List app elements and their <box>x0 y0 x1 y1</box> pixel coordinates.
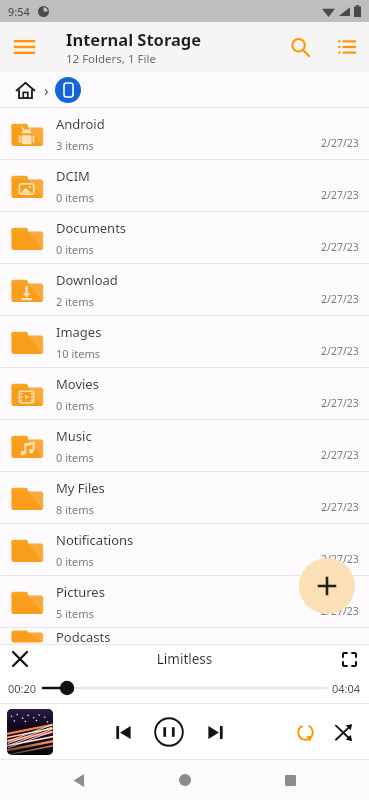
staticText: 0 items <box>56 242 94 257</box>
button[interactable]: Menu <box>0 23 48 71</box>
button[interactable]: My Files <box>0 472 369 523</box>
staticText: 10 items <box>56 346 101 361</box>
staticText: 2/27/23 <box>321 188 359 202</box>
staticText: Pictures <box>56 583 105 601</box>
staticText: 12 Folders, 1 File <box>66 51 156 67</box>
staticText: Podcasts <box>56 628 111 644</box>
button[interactable]: Home <box>10 75 40 105</box>
button[interactable]: Android <box>0 108 369 159</box>
staticText: 0 items <box>56 398 94 413</box>
staticText: Internal Storage <box>66 28 202 50</box>
button[interactable]: Previous <box>104 713 142 751</box>
staticText: 2/27/23 <box>321 552 359 566</box>
staticText: 8 items <box>56 502 94 517</box>
staticText: Android <box>56 115 105 133</box>
button[interactable]: Close <box>0 645 40 673</box>
button[interactable]: Download <box>0 264 369 315</box>
staticText: 2/27/23 <box>321 136 359 150</box>
staticText: Images <box>56 323 102 341</box>
staticText: 2/27/23 <box>321 292 359 306</box>
button[interactable]: Repeat <box>286 713 324 751</box>
button[interactable]: Internal storage <box>55 77 81 103</box>
staticText: 2/27/23 <box>321 396 359 410</box>
staticText: Documents <box>56 219 127 237</box>
button[interactable]: Images <box>0 316 369 367</box>
button[interactable]: DCIM <box>0 160 369 211</box>
staticText: 5 items <box>56 606 94 621</box>
staticText: 2/27/23 <box>321 344 359 358</box>
button[interactable]: Pictures <box>0 576 369 627</box>
staticText: 0 items <box>56 190 94 205</box>
staticText: DCIM <box>56 167 90 185</box>
staticText: 2 items <box>56 294 94 309</box>
button[interactable]: Shuffle <box>324 713 362 751</box>
button[interactable] <box>7 709 53 755</box>
staticText: 2/27/23 <box>321 500 359 514</box>
staticText: Music <box>56 427 92 445</box>
button[interactable]: Add <box>299 558 355 614</box>
button[interactable]: Search <box>277 24 323 70</box>
staticText: 04:04 <box>332 681 361 696</box>
staticText: 2/27/23 <box>321 240 359 254</box>
staticText: 0 items <box>56 554 94 569</box>
staticText: 00:20 <box>8 681 37 696</box>
button[interactable]: Back <box>52 760 106 800</box>
staticText: Download <box>56 271 118 289</box>
button[interactable] <box>43 676 326 700</box>
staticText: 9:54 <box>8 4 30 19</box>
staticText: 3 items <box>56 138 94 153</box>
button[interactable]: Notifications <box>0 524 369 575</box>
button[interactable]: Movies <box>0 368 369 419</box>
staticText: 0 items <box>56 450 94 465</box>
button[interactable]: View mode <box>323 24 369 70</box>
staticText: 2/27/23 <box>321 604 359 618</box>
staticText: Movies <box>56 375 99 393</box>
button[interactable]: Podcasts <box>0 628 369 644</box>
button[interactable]: Home <box>158 760 212 800</box>
staticText: Limitless <box>40 650 329 668</box>
button[interactable]: Music <box>0 420 369 471</box>
button[interactable]: Pause <box>148 711 190 753</box>
button[interactable]: Recents <box>263 760 317 800</box>
staticText: 2/27/23 <box>321 448 359 462</box>
button[interactable]: Next <box>196 713 234 751</box>
button[interactable]: Fullscreen <box>329 645 369 673</box>
button[interactable]: Documents <box>0 212 369 263</box>
staticText: › <box>44 80 49 100</box>
staticText: Notifications <box>56 531 134 549</box>
staticText: My Files <box>56 479 105 497</box>
